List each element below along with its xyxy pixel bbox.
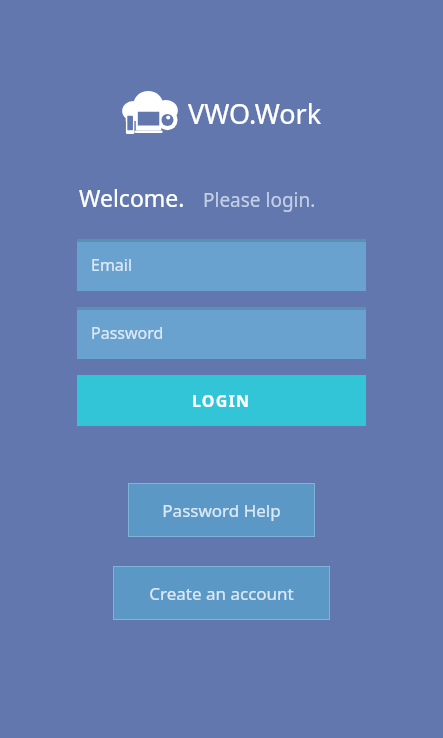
staticText: Please login. xyxy=(203,187,316,213)
button[interactable]: Password xyxy=(77,307,366,359)
staticText: Password Help xyxy=(162,499,281,522)
other: VWO.Work logo xyxy=(121,88,179,138)
staticText: Welcome. xyxy=(79,182,185,213)
button[interactable]: Email xyxy=(77,239,366,291)
button[interactable]: Password Help xyxy=(128,483,315,537)
staticText: Create an account xyxy=(149,582,294,605)
button[interactable]: Create an account xyxy=(113,566,330,620)
staticText: Email xyxy=(91,254,133,276)
staticText: Password xyxy=(91,322,164,344)
button[interactable]: LOGIN xyxy=(77,375,366,426)
staticText: VWO.Work xyxy=(188,95,322,132)
staticText: LOGIN xyxy=(192,390,251,412)
